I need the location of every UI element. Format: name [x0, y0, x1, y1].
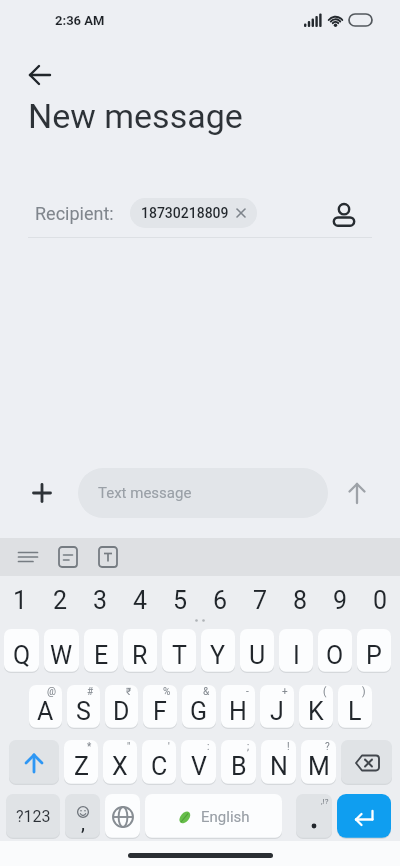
button[interactable]: 8	[280, 582, 320, 618]
staticText: J	[270, 697, 284, 726]
staticText: N	[270, 752, 288, 781]
staticText: ₹	[126, 686, 132, 698]
staticText: 9	[333, 586, 348, 615]
staticText: ?123	[16, 807, 51, 826]
staticText: W	[50, 641, 73, 670]
staticText: #	[87, 686, 94, 698]
button[interactable]	[343, 479, 371, 507]
button[interactable]: ?123	[6, 794, 60, 839]
staticText: 2:36 AM	[55, 13, 105, 28]
button[interactable]: 18730218809	[130, 198, 257, 228]
button[interactable]: P	[357, 629, 391, 673]
button[interactable]: Y	[201, 629, 235, 673]
staticText: Z	[74, 752, 89, 781]
button[interactable]: E	[84, 629, 118, 673]
staticText: 2	[53, 586, 68, 615]
button[interactable]: H	[221, 685, 255, 729]
staticText: F	[153, 697, 167, 726]
button[interactable]	[331, 200, 357, 226]
button[interactable]: ,	[65, 794, 100, 839]
button[interactable]: T	[162, 629, 196, 673]
button[interactable]: N	[261, 740, 296, 785]
staticText: !	[287, 741, 290, 753]
staticText: S	[76, 697, 91, 726]
staticText: ;	[247, 741, 250, 753]
button[interactable]: X	[103, 740, 137, 785]
button[interactable]: ,!?	[296, 794, 332, 839]
staticText: English	[201, 808, 250, 826]
button[interactable]: F	[143, 685, 177, 729]
button[interactable]: 5	[160, 582, 200, 618]
button[interactable]: Q	[4, 629, 39, 673]
staticText: %	[163, 686, 171, 698]
staticText: 18730218809	[141, 205, 229, 221]
button[interactable]	[58, 547, 78, 567]
staticText: R	[132, 641, 148, 670]
button[interactable]: 4	[120, 582, 160, 618]
staticText: 4	[133, 586, 148, 615]
button[interactable]: C	[142, 740, 176, 785]
button[interactable]: G	[182, 685, 216, 729]
staticText: -	[246, 686, 249, 698]
staticText: +	[282, 686, 288, 698]
button[interactable]: 2	[40, 582, 80, 618]
button[interactable]: U	[240, 629, 274, 673]
staticText: ?	[325, 741, 330, 753]
button[interactable]	[105, 794, 140, 839]
button[interactable]: D	[105, 685, 138, 729]
staticText: 5	[173, 586, 188, 615]
staticText: 6	[213, 586, 228, 615]
button[interactable]: K	[299, 685, 333, 729]
button[interactable]	[98, 547, 118, 567]
button[interactable]: A	[29, 685, 62, 729]
staticText: K	[308, 697, 324, 726]
staticText: :	[207, 741, 210, 753]
staticText: @	[47, 686, 56, 698]
staticText: G	[190, 697, 208, 726]
staticText: B	[231, 752, 247, 781]
staticText: C	[151, 752, 168, 781]
staticText: P	[366, 641, 382, 670]
button[interactable]	[28, 63, 52, 87]
button[interactable]: 6	[200, 582, 240, 618]
staticText: ,!?	[321, 797, 329, 806]
staticText: I	[293, 641, 300, 670]
staticText: U	[249, 641, 266, 670]
staticText: D	[113, 697, 130, 726]
button[interactable]: V	[181, 740, 216, 785]
button[interactable]: Text message	[78, 468, 328, 518]
button[interactable]	[337, 794, 391, 839]
button[interactable]: L	[338, 685, 372, 729]
button[interactable]	[29, 480, 55, 506]
staticText: O	[326, 641, 344, 670]
button[interactable]: English	[145, 794, 282, 839]
button[interactable]	[18, 547, 38, 567]
button[interactable]: Z	[64, 740, 98, 785]
button[interactable]	[9, 740, 59, 785]
staticText: ,	[81, 813, 85, 834]
button[interactable]: I	[279, 629, 313, 673]
button[interactable]: 0	[360, 582, 400, 618]
button[interactable]: 1	[0, 582, 40, 618]
button[interactable]: J	[260, 685, 294, 729]
button[interactable]: 3	[80, 582, 120, 618]
button[interactable]	[341, 740, 392, 785]
staticText: (	[323, 686, 327, 698]
staticText: '	[168, 741, 170, 753]
staticText: V	[191, 752, 207, 781]
button[interactable]: M	[301, 740, 336, 785]
staticText: 0	[373, 586, 388, 615]
staticText: 7	[253, 586, 268, 615]
staticText: *	[87, 741, 92, 753]
button[interactable]: S	[67, 685, 100, 729]
staticText: )	[362, 686, 366, 698]
button[interactable]: B	[221, 740, 256, 785]
button[interactable]: W	[44, 629, 79, 673]
button[interactable]: 7	[240, 582, 280, 618]
button[interactable]: R	[123, 629, 157, 673]
staticText: New message	[28, 96, 243, 136]
staticText: 3	[93, 586, 108, 615]
staticText: M	[308, 752, 330, 781]
button[interactable]: 9	[320, 582, 360, 618]
button[interactable]: O	[318, 629, 352, 673]
